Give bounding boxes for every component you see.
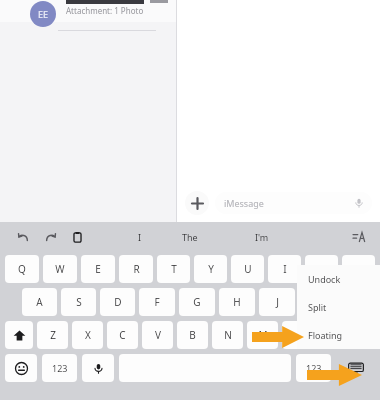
staticText: iMessage bbox=[224, 197, 264, 209]
button[interactable]: C bbox=[107, 321, 138, 349]
button[interactable]: X bbox=[72, 321, 103, 349]
button[interactable]: Redo bbox=[41, 228, 59, 246]
button[interactable]: A bbox=[22, 288, 57, 316]
staticText: F bbox=[154, 295, 160, 309]
button[interactable]: U bbox=[231, 255, 264, 283]
button[interactable]: D bbox=[100, 288, 135, 316]
button[interactable]: G bbox=[179, 288, 215, 316]
staticText: W bbox=[55, 262, 65, 276]
button[interactable] bbox=[0, 0, 176, 22]
staticText: Undock bbox=[308, 273, 341, 285]
staticText: R bbox=[133, 262, 140, 276]
staticText: Q bbox=[18, 262, 26, 276]
staticText: S bbox=[76, 295, 82, 309]
button[interactable]: Text formatting bbox=[350, 228, 368, 246]
staticText: Floating bbox=[308, 329, 343, 341]
button[interactable]: Add attachment bbox=[185, 191, 209, 215]
button[interactable]: S bbox=[61, 288, 96, 316]
button[interactable]: M bbox=[247, 321, 278, 349]
button[interactable]: Emoji bbox=[5, 354, 37, 382]
button[interactable]: 123 bbox=[42, 354, 77, 382]
staticText: N bbox=[224, 328, 232, 342]
button[interactable]: iMessage bbox=[215, 192, 372, 214]
staticText: B bbox=[189, 328, 196, 342]
button[interactable]: I bbox=[104, 222, 176, 252]
staticText: X bbox=[85, 328, 91, 342]
button[interactable]: I'm bbox=[226, 222, 298, 252]
staticText: H bbox=[233, 295, 241, 309]
staticText: J bbox=[276, 295, 279, 309]
staticText: M bbox=[258, 328, 268, 342]
button[interactable]: H bbox=[219, 288, 255, 316]
staticText: Y bbox=[208, 262, 214, 276]
staticText: T bbox=[171, 262, 177, 276]
staticText: Attachment: 1 Photo bbox=[66, 5, 144, 16]
staticText: G bbox=[193, 295, 201, 309]
button[interactable]: Floating bbox=[297, 321, 380, 349]
staticText: Z bbox=[50, 328, 56, 342]
button[interactable]: B bbox=[177, 321, 208, 349]
button[interactable]: T bbox=[157, 255, 190, 283]
staticText: K bbox=[314, 295, 321, 309]
staticText: I'm bbox=[255, 231, 269, 243]
button[interactable]: The bbox=[154, 222, 226, 252]
staticText: Split bbox=[308, 301, 327, 313]
staticText: A bbox=[36, 295, 43, 309]
staticText: V bbox=[155, 328, 161, 342]
button[interactable]: Y bbox=[194, 255, 227, 283]
button[interactable]: I bbox=[268, 255, 301, 283]
button[interactable]: Paste bbox=[68, 228, 86, 246]
button[interactable] bbox=[282, 321, 375, 349]
button[interactable]: Dictation bbox=[82, 354, 114, 382]
staticText: The bbox=[182, 231, 198, 243]
staticText: I bbox=[283, 262, 287, 276]
button[interactable]: O bbox=[305, 255, 338, 283]
button[interactable]: V bbox=[142, 321, 173, 349]
staticText: EE bbox=[38, 8, 49, 20]
button[interactable]: W bbox=[43, 255, 77, 283]
staticText: C bbox=[119, 328, 126, 342]
button[interactable]: N bbox=[212, 321, 243, 349]
staticText: 123 bbox=[306, 362, 322, 374]
button[interactable]: Undock bbox=[297, 265, 380, 293]
staticText: 123 bbox=[52, 362, 68, 374]
button[interactable]: Undo bbox=[14, 228, 32, 246]
button[interactable]: 123 bbox=[296, 354, 331, 382]
button[interactable] bbox=[5, 321, 33, 349]
button[interactable]: Split bbox=[297, 293, 380, 321]
button[interactable]: F bbox=[139, 288, 175, 316]
button[interactable]: E bbox=[81, 255, 115, 283]
staticText: E bbox=[95, 262, 101, 276]
button[interactable]: Q bbox=[5, 255, 39, 283]
button[interactable]: J bbox=[259, 288, 295, 316]
button[interactable]: K bbox=[299, 288, 335, 316]
button[interactable]: Hide keyboard bbox=[336, 354, 375, 382]
staticText: I bbox=[138, 231, 142, 243]
staticText: U bbox=[244, 262, 252, 276]
button[interactable]: Z bbox=[37, 321, 68, 349]
button[interactable]: R bbox=[119, 255, 153, 283]
staticText: D bbox=[114, 295, 122, 309]
